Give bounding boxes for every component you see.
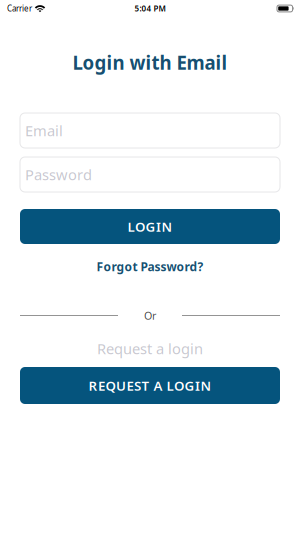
- staticText: REQUEST A LOGIN: [88, 377, 211, 394]
- staticText: LOGIN: [127, 218, 172, 235]
- staticText: 5:04 PM: [134, 3, 165, 14]
- staticText: Login with Email: [72, 50, 227, 75]
- button[interactable]: Email: [20, 113, 280, 148]
- button[interactable]: REQUEST A LOGIN: [20, 367, 280, 404]
- button[interactable]: LOGIN: [20, 209, 280, 244]
- staticText: Forgot Password?: [96, 258, 203, 274]
- staticText: Password: [25, 165, 92, 184]
- button[interactable]: Forgot Password?: [96, 258, 203, 274]
- staticText: Request a login: [97, 339, 203, 358]
- staticText: Email: [25, 121, 63, 140]
- staticText: Carrier: [7, 3, 32, 14]
- staticText: Or: [144, 308, 156, 323]
- button[interactable]: Request a login: [97, 340, 203, 356]
- button[interactable]: Password: [20, 157, 280, 192]
